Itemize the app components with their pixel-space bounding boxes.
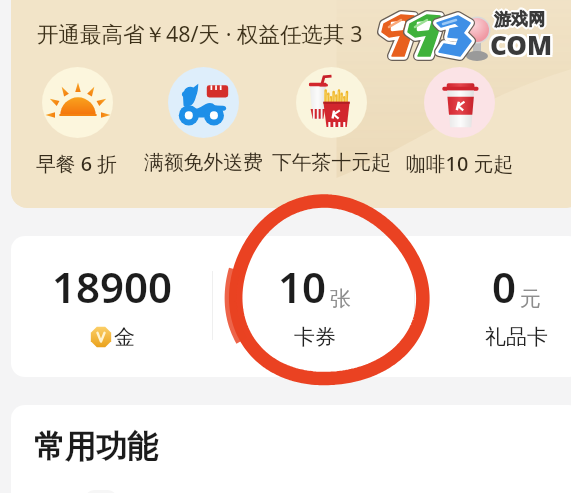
button[interactable]: 下午茶十元起 (268, 67, 394, 177)
staticText: 游戏网 (492, 9, 543, 30)
button[interactable]: 满额免外送费 (140, 67, 266, 177)
staticText: 游戏网 (494, 9, 545, 30)
staticText: COM (490, 27, 553, 62)
staticText: COM (492, 29, 555, 64)
button[interactable]: 早餐6折 (14, 67, 140, 177)
staticText: 常用功能 (34, 427, 158, 466)
button[interactable]: 开通最高省￥48/天 · 权益任选其 3 (23, 14, 383, 52)
button[interactable]: 快捷功能 (85, 490, 117, 493)
staticText: 金 (114, 324, 135, 350)
staticText: COM (492, 27, 555, 62)
staticText: 开通最高省￥48/天 · 权益任选其 3 (37, 19, 363, 48)
staticText: 游戏网 (495, 10, 546, 31)
staticText: 张 (330, 286, 351, 312)
staticText: COM (492, 25, 555, 60)
button[interactable]: 咖啡10元起 (396, 67, 522, 177)
staticText: 游戏网 (496, 9, 547, 30)
staticText: 礼品卡 (485, 324, 548, 350)
staticText: 游戏网 (494, 7, 545, 28)
staticText: 游戏网 (494, 11, 545, 32)
staticText: 0 (492, 258, 517, 315)
staticText: 10 (278, 258, 327, 315)
staticText: 18900 (52, 258, 173, 315)
staticText: 下午茶十元起 (272, 150, 391, 175)
other: 下午茶十元起 (296, 67, 367, 138)
other: 咖啡10元起 (424, 67, 495, 138)
staticText: 咖啡10 元起 (406, 150, 513, 177)
button[interactable]: 0 (415, 236, 571, 377)
staticText: 游戏网 (495, 8, 546, 29)
other: 早餐6折 (42, 67, 113, 138)
staticText: 游戏网 (493, 8, 544, 29)
staticText: COM (490, 25, 553, 60)
button[interactable]: 10 (213, 236, 415, 377)
staticText: COM (488, 25, 551, 60)
staticText: 早餐 6 折 (36, 150, 118, 177)
staticText: COM (490, 29, 553, 64)
staticText: COM (488, 27, 551, 62)
staticText: COM (488, 29, 551, 64)
button[interactable]: 18900 (11, 236, 213, 377)
staticText: 元 (520, 286, 541, 312)
staticText: 卡券 (294, 324, 336, 350)
staticText: 满额免外送费 (144, 150, 263, 175)
staticText: 游戏网 (493, 10, 544, 31)
other: 满额免外送费 (168, 67, 239, 138)
